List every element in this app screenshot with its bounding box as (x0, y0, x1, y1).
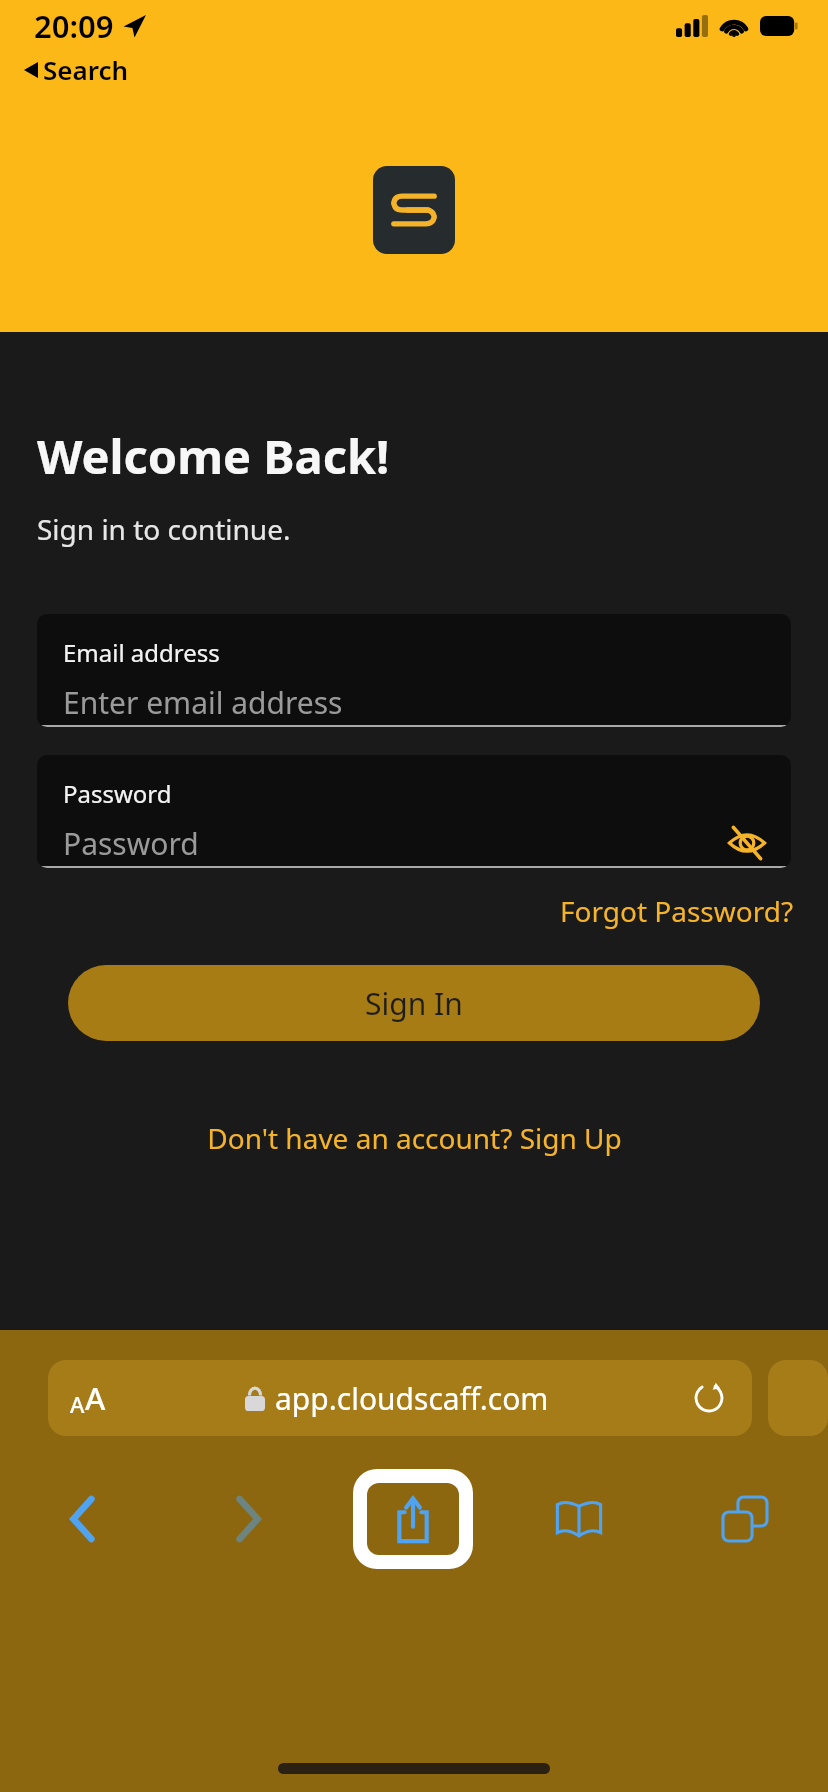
staticText: Sign in to continue. (37, 510, 291, 548)
button[interactable]: Forward (165, 1464, 330, 1574)
button[interactable]: Show password (725, 821, 769, 865)
staticText: Don't have an account? Sign Up (207, 1119, 622, 1157)
staticText: 20:09 (34, 5, 114, 47)
button[interactable]: Reload page (688, 1377, 730, 1419)
button[interactable]: Tabs (662, 1464, 828, 1574)
staticText: Enter email address (63, 682, 343, 723)
button[interactable]: Share (353, 1469, 473, 1569)
button[interactable]: Password (37, 755, 791, 868)
button[interactable]: Sign In (68, 965, 760, 1041)
button[interactable]: Don't have an account? Sign Up (197, 1111, 632, 1165)
button[interactable]: Next tab (768, 1360, 828, 1436)
staticText: A (70, 1389, 85, 1419)
staticText: Welcome Back! (37, 424, 390, 488)
other: CloudScaff logo (373, 166, 455, 254)
button[interactable]: Email address (37, 614, 791, 727)
button[interactable]: Forgot Password? (554, 884, 800, 938)
staticText: Password (63, 777, 172, 810)
staticText: Search (43, 52, 129, 87)
button[interactable]: Text size (48, 1360, 752, 1436)
button[interactable]: Search (20, 48, 133, 91)
button[interactable]: Text size (70, 1377, 106, 1419)
staticText: Password (63, 823, 199, 864)
button[interactable]: Back (0, 1464, 165, 1574)
button[interactable]: Bookmarks (496, 1464, 662, 1574)
staticText: app.cloudscaff.com (275, 1378, 549, 1419)
staticText: A (85, 1377, 106, 1419)
staticText: Email address (63, 636, 220, 669)
staticText: Forgot Password? (560, 892, 794, 930)
staticText: Sign In (365, 983, 463, 1024)
